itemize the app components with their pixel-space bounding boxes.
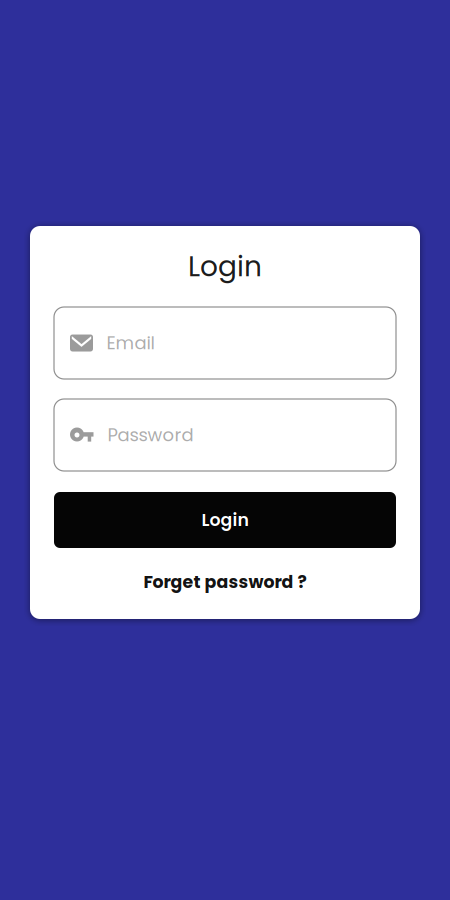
button[interactable]: Email [54,307,396,379]
staticText: Password [107,422,193,448]
button[interactable]: Forget password ? [143,566,306,598]
button[interactable]: Login [54,492,396,548]
staticText: Forget password ? [143,570,306,594]
staticText: Login [201,508,248,532]
staticText: Login [188,247,262,286]
button[interactable]: Password [54,399,396,471]
staticText: Email [106,330,154,356]
